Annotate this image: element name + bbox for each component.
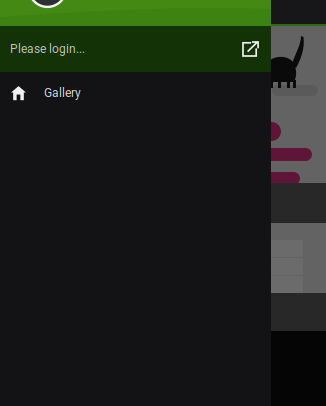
button[interactable]: Gallery: [0, 72, 271, 114]
staticText: Please login...: [10, 42, 85, 56]
button[interactable]: Please login...: [0, 26, 271, 72]
staticText: Gallery: [44, 86, 81, 100]
staticText: RANDOM: [8, 7, 61, 21]
